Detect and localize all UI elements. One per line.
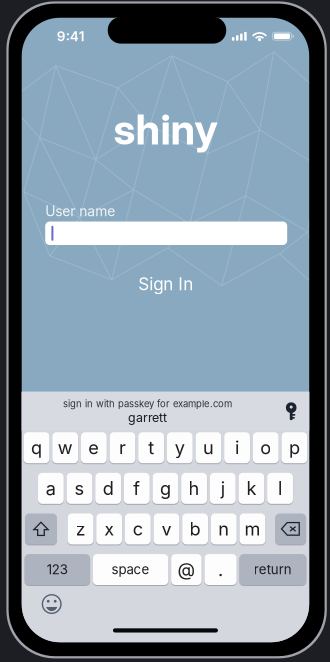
button[interactable]: b — [182, 513, 208, 544]
staticText: b — [190, 518, 201, 540]
staticText: m — [244, 518, 260, 540]
staticText: shiny — [113, 104, 217, 155]
button[interactable]: a — [38, 473, 64, 504]
staticText: e — [88, 437, 99, 459]
staticText: o — [260, 437, 271, 459]
staticText: k — [246, 477, 256, 499]
staticText: @ — [177, 559, 195, 580]
button[interactable]: e — [81, 432, 107, 463]
button[interactable]: Delete — [275, 513, 306, 544]
button[interactable]: z — [68, 513, 93, 544]
button[interactable]: p — [281, 432, 307, 463]
button[interactable]: h — [181, 473, 207, 504]
staticText: sign in with passkey for example.com — [63, 398, 232, 409]
button[interactable]: space — [93, 554, 168, 585]
staticText: l — [278, 477, 282, 499]
staticText: v — [161, 518, 171, 540]
staticText: garrett — [128, 410, 167, 425]
staticText: User name — [45, 203, 115, 220]
button[interactable]: m — [239, 513, 265, 544]
staticText: Sign In — [138, 274, 193, 294]
staticText: return — [254, 562, 292, 578]
button[interactable]: w — [52, 432, 78, 463]
staticText: z — [75, 518, 85, 540]
staticText: c — [133, 518, 143, 540]
button[interactable]: j — [210, 473, 236, 504]
button[interactable]: Passkey — [283, 401, 299, 421]
staticText: s — [74, 477, 84, 499]
staticText: 123 — [47, 562, 68, 578]
button[interactable]: i — [224, 432, 250, 463]
staticText: d — [103, 477, 114, 499]
staticText: r — [119, 437, 126, 459]
staticText: j — [221, 477, 225, 499]
button[interactable]: . — [204, 554, 237, 585]
staticText: y — [175, 437, 185, 459]
button[interactable]: 123 — [25, 554, 90, 585]
button[interactable]: n — [211, 513, 237, 544]
button[interactable]: q — [24, 432, 49, 463]
staticText: a — [46, 477, 56, 499]
staticText: w — [58, 437, 73, 459]
button[interactable]: sign in with passkey for example.com — [22, 392, 273, 431]
button[interactable]: s — [67, 473, 92, 504]
button[interactable]: c — [125, 513, 151, 544]
staticText: n — [218, 518, 229, 540]
staticText: i — [235, 437, 239, 459]
button[interactable]: k — [238, 473, 264, 504]
staticText: q — [31, 437, 42, 459]
button[interactable]: d — [95, 473, 121, 504]
button[interactable]: r — [110, 432, 135, 463]
staticText: t — [148, 437, 154, 459]
button[interactable]: f — [124, 473, 150, 504]
staticText: h — [189, 477, 200, 499]
button[interactable]: g — [152, 473, 178, 504]
button[interactable]: Shift — [25, 513, 57, 544]
button[interactable]: t — [138, 432, 164, 463]
staticText: f — [133, 477, 140, 499]
staticText: space — [112, 562, 150, 578]
button[interactable]: o — [253, 432, 279, 463]
button[interactable]: x — [96, 513, 122, 544]
staticText: p — [289, 437, 300, 459]
button[interactable]: u — [195, 432, 221, 463]
button[interactable]: @ — [171, 554, 202, 585]
button[interactable]: l — [267, 473, 293, 504]
staticText: g — [160, 477, 171, 499]
staticText: u — [203, 437, 214, 459]
button[interactable]: v — [153, 513, 179, 544]
button[interactable]: Sign In — [45, 271, 286, 297]
button[interactable]: Emoji — [42, 594, 62, 614]
button[interactable]: return — [239, 554, 306, 585]
button[interactable]: y — [167, 432, 193, 463]
staticText: 9:41 — [57, 28, 85, 44]
staticText: . — [218, 559, 223, 580]
staticText: x — [104, 518, 114, 540]
